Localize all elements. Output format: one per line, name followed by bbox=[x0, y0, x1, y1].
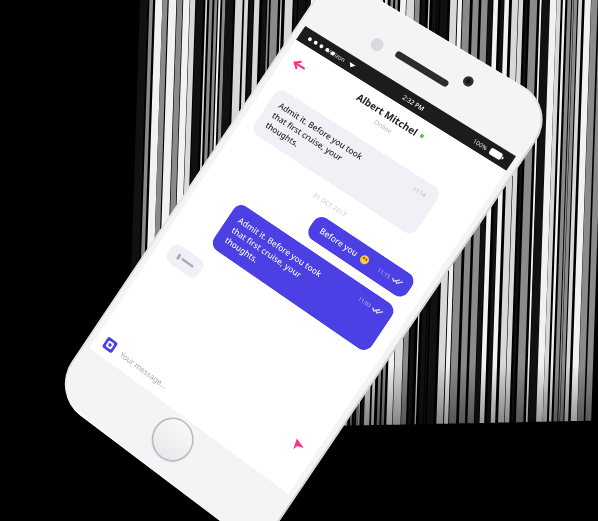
button[interactable]: Send bbox=[285, 431, 312, 460]
staticText: Your message... bbox=[118, 349, 170, 391]
button[interactable]: Admit it. Before you took that first cru… bbox=[249, 87, 443, 237]
staticText: 100% bbox=[471, 137, 489, 153]
button[interactable]: Back bbox=[284, 50, 313, 79]
staticText: Albert Mitchel bbox=[354, 90, 421, 139]
staticText: 31 OCT 2017 bbox=[312, 191, 349, 218]
staticText: Before you bbox=[317, 225, 361, 260]
button[interactable]: Before you bbox=[304, 213, 417, 300]
button[interactable]: Admit it. Before you took that first cru… bbox=[209, 201, 397, 354]
staticText: 2:32 PM bbox=[401, 93, 427, 113]
button[interactable]: Home bbox=[142, 407, 204, 472]
staticText: 11:03 bbox=[357, 295, 374, 309]
staticText: Admit it. Before you took that first cru… bbox=[263, 100, 365, 183]
staticText: 11:14 bbox=[412, 185, 428, 199]
button[interactable]: Your message... bbox=[90, 323, 305, 494]
button[interactable]: Typing bbox=[163, 241, 206, 281]
staticText: Online bbox=[372, 117, 395, 136]
staticText: 11:15 bbox=[376, 266, 393, 280]
staticText: Admit it. Before you took that first cru… bbox=[223, 215, 325, 300]
staticText: Verizon bbox=[325, 47, 347, 64]
